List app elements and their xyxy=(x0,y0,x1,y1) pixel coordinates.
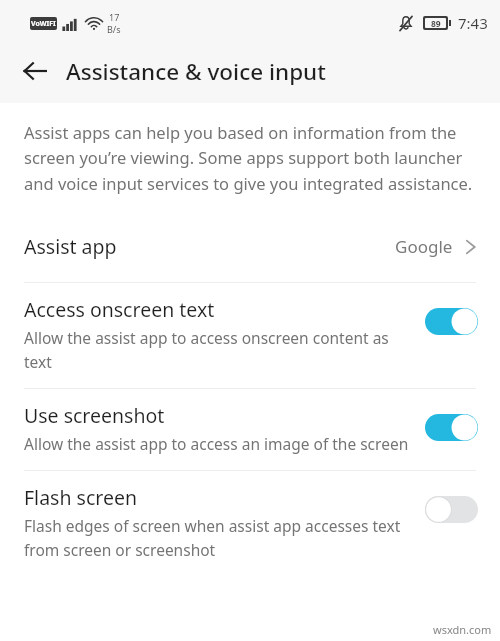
button[interactable]: On xyxy=(425,308,478,335)
staticText: Flash edges of screen when assist app ac… xyxy=(24,515,411,560)
button[interactable]: Off xyxy=(425,496,478,523)
staticText: 17 xyxy=(109,11,120,23)
staticText: 7:43 xyxy=(458,13,488,33)
staticText: wsxdn.com xyxy=(433,622,492,637)
staticText: Google xyxy=(395,235,453,258)
staticText: Assistance & voice input xyxy=(66,56,326,87)
staticText: Assist apps can help you based on inform… xyxy=(24,121,478,195)
button[interactable]: Use screenshot xyxy=(0,389,500,470)
staticText: 89 xyxy=(431,18,441,28)
staticText: Allow the assist app to access an image … xyxy=(24,433,409,454)
staticText: Use screenshot xyxy=(24,402,165,429)
staticText: Allow the assist app to access onscreen … xyxy=(24,327,411,372)
staticText: Flash screen xyxy=(24,484,137,511)
staticText: Assist app xyxy=(24,233,395,260)
button[interactable]: Access onscreen text xyxy=(0,283,500,388)
button[interactable]: Assist app xyxy=(0,225,500,282)
staticText: B/s xyxy=(107,23,121,35)
button[interactable]: Flash screen xyxy=(0,471,500,576)
button[interactable]: On xyxy=(425,414,478,441)
button[interactable]: Back xyxy=(10,46,60,96)
staticText: Access onscreen text xyxy=(24,296,215,323)
staticText: VoWIFI xyxy=(31,19,56,29)
